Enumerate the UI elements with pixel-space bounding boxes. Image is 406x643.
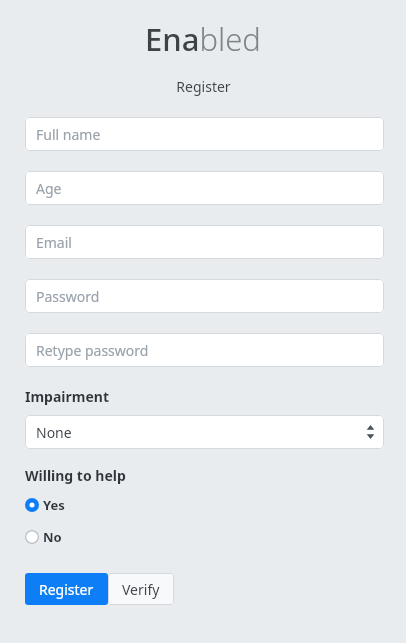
staticText: Password <box>36 287 100 306</box>
staticText: No <box>43 528 62 546</box>
button[interactable]: Full name <box>25 117 384 151</box>
button[interactable]: Impairment selector <box>25 415 384 449</box>
button[interactable]: Verify <box>108 573 174 605</box>
button[interactable]: Register <box>25 573 108 605</box>
button[interactable]: No <box>25 524 384 550</box>
staticText: Verify <box>122 580 160 599</box>
staticText: Age <box>36 179 62 198</box>
staticText: Willing to help <box>25 466 126 485</box>
button[interactable]: Retype password <box>25 333 384 367</box>
staticText: None <box>36 423 72 442</box>
staticText: Register <box>39 580 94 599</box>
staticText: Full name <box>36 125 101 144</box>
button[interactable]: Password <box>25 279 384 313</box>
staticText: Impairment <box>25 387 109 406</box>
button[interactable]: Yes <box>25 492 384 518</box>
staticText: Enabled <box>145 18 261 60</box>
button[interactable]: Age <box>25 171 384 205</box>
staticText: Retype password <box>36 341 149 360</box>
staticText: Yes <box>43 496 65 514</box>
staticText: Email <box>36 233 72 252</box>
button[interactable]: Email <box>25 225 384 259</box>
staticText: Register <box>176 77 231 96</box>
